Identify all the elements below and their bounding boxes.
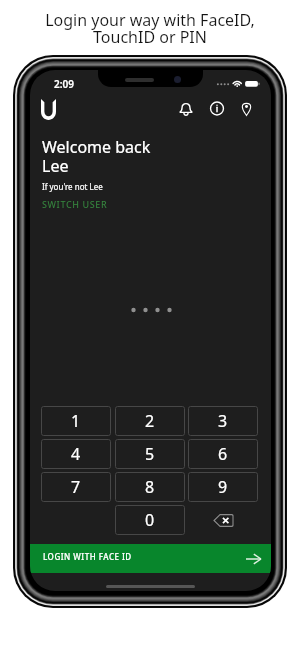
button[interactable]: 7 <box>41 472 111 502</box>
button[interactable]: Home <box>35 94 63 122</box>
staticText: Login your way with FaceID, TouchID or P… <box>0 9 300 47</box>
staticText: If you're not Lee <box>42 181 103 192</box>
staticText: 7 <box>71 476 81 498</box>
button[interactable]: Backspace <box>188 505 258 535</box>
button[interactable]: 6 <box>188 439 258 469</box>
staticText: 9 <box>218 476 228 498</box>
button[interactable]: 0 <box>115 505 185 535</box>
button[interactable]: Information <box>206 97 228 119</box>
button[interactable]: SWITCH USER <box>42 198 108 210</box>
button[interactable]: 1 <box>41 406 111 436</box>
staticText: 1 <box>71 410 81 432</box>
button[interactable]: 4 <box>41 439 111 469</box>
staticText: 8 <box>145 476 155 498</box>
button[interactable]: LOGIN WITH FACE ID <box>30 544 271 573</box>
staticText: 4 <box>71 443 81 465</box>
button[interactable]: 8 <box>115 472 185 502</box>
staticText: 2 <box>145 410 155 432</box>
staticText: 0 <box>145 509 155 531</box>
staticText: 5 <box>145 443 155 465</box>
button[interactable]: 2 <box>115 406 185 436</box>
button[interactable]: 9 <box>188 472 258 502</box>
staticText: 2:09 <box>54 77 74 91</box>
button[interactable]: 5 <box>115 439 185 469</box>
staticText: Welcome back Lee <box>42 136 151 176</box>
button[interactable]: 3 <box>188 406 258 436</box>
staticText: 6 <box>218 443 228 465</box>
button[interactable]: Location <box>235 97 257 119</box>
staticText: SWITCH USER <box>42 198 108 210</box>
staticText: 3 <box>218 410 228 432</box>
staticText: LOGIN WITH FACE ID <box>43 551 132 562</box>
button[interactable]: Notifications <box>175 97 197 119</box>
